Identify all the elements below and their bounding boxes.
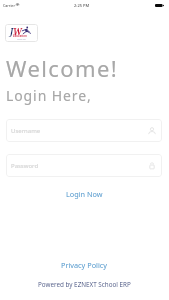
button[interactable]: Login Now [0,187,169,201]
staticText: School ERP [17,38,26,40]
staticText: Login Now [66,189,103,199]
other: Password [148,162,156,170]
staticText: Education [13,34,27,38]
button[interactable]: Username [6,119,162,142]
staticText: 2:25 PM [74,3,90,8]
staticText: Welcome! [6,53,119,83]
staticText: Carrier [3,3,15,8]
staticText: Password [11,162,39,170]
staticText: Privacy Policy [61,260,108,270]
other: Battery full [155,4,164,7]
other: JW Education logo [5,24,38,42]
staticText: Login Here, [6,86,92,105]
staticText: J [10,26,14,37]
other: Username [148,127,156,135]
staticText: Username [11,127,41,135]
button[interactable]: Password [6,154,162,177]
staticText: W [13,26,22,37]
button[interactable]: Privacy Policy [0,259,169,271]
other: Wi-Fi signal [16,3,19,6]
staticText: Powered by EZNEXT School ERP [38,280,131,289]
